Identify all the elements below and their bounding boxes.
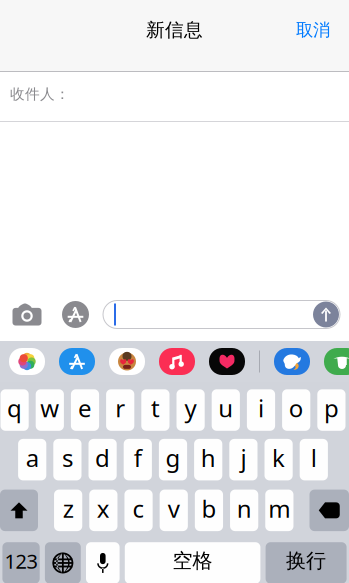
staticText: j <box>240 442 246 474</box>
staticText: x <box>97 492 110 524</box>
button[interactable]: 空格 <box>125 542 260 583</box>
button[interactable]: w <box>36 389 64 431</box>
button[interactable]: 换行 <box>266 542 347 583</box>
button[interactable]: o <box>282 389 310 431</box>
button[interactable]: v <box>160 490 188 531</box>
button[interactable]: Photos <box>9 348 45 375</box>
staticText: 新信息 <box>146 18 203 41</box>
button[interactable]: c <box>124 490 153 531</box>
staticText: p <box>324 392 339 424</box>
staticText: c <box>133 492 145 524</box>
button[interactable]: j <box>229 439 257 480</box>
button[interactable]: Dictate <box>86 542 120 583</box>
staticText: r <box>115 392 125 424</box>
button[interactable]: x <box>89 490 117 531</box>
staticText: z <box>63 492 74 524</box>
button[interactable]: b <box>195 490 223 531</box>
staticText: 123 <box>5 548 38 574</box>
staticText: w <box>40 392 59 424</box>
button[interactable]: m <box>265 490 293 531</box>
staticText: v <box>168 492 180 524</box>
button[interactable]: k <box>264 439 293 480</box>
button[interactable]: Music <box>159 348 195 375</box>
staticText: h <box>201 442 216 474</box>
button[interactable]: f <box>124 439 152 480</box>
staticText: l <box>311 442 317 474</box>
button[interactable]: p <box>317 389 345 431</box>
button[interactable]: App Store <box>61 300 89 328</box>
button[interactable]: e <box>71 389 99 431</box>
button[interactable]: r <box>106 389 134 431</box>
button[interactable]: n <box>230 490 258 531</box>
button[interactable]: Camera <box>12 300 41 328</box>
button[interactable]: 123 <box>2 542 40 583</box>
staticText: n <box>237 492 252 524</box>
button[interactable]: l <box>300 439 328 480</box>
button[interactable]: y <box>176 389 205 431</box>
button[interactable]: a <box>18 439 46 480</box>
button[interactable]: z <box>54 490 82 531</box>
staticText: g <box>165 442 180 474</box>
button[interactable]: s <box>53 439 81 480</box>
staticText: 收件人： <box>10 85 70 103</box>
staticText: f <box>134 442 142 474</box>
button[interactable]: Switch keyboard <box>45 542 81 583</box>
button[interactable]: t <box>141 389 169 431</box>
staticText: 换行 <box>286 549 326 573</box>
button[interactable]: i <box>247 389 275 431</box>
button[interactable]: g <box>159 439 187 480</box>
staticText: t <box>151 392 160 424</box>
staticText: k <box>272 442 285 474</box>
button[interactable]: Digital Touch <box>209 348 245 375</box>
staticText: u <box>218 392 233 424</box>
button[interactable]: Dolphin app <box>274 348 310 375</box>
staticText: 空格 <box>173 549 213 573</box>
button[interactable]: 取消 <box>282 9 349 51</box>
button[interactable]: u <box>212 389 240 431</box>
button[interactable]: h <box>194 439 222 480</box>
button[interactable]: Shift <box>0 490 38 531</box>
staticText: b <box>201 492 216 524</box>
button[interactable]: Delete <box>309 490 349 531</box>
staticText: s <box>62 442 73 474</box>
button[interactable]: Memoji <box>109 348 145 375</box>
staticText: e <box>78 392 92 424</box>
staticText: 取消 <box>296 19 330 41</box>
staticText: y <box>185 392 197 424</box>
button[interactable]: d <box>88 439 117 480</box>
button[interactable]: Green app <box>324 348 349 375</box>
staticText: o <box>289 392 304 424</box>
staticText: a <box>26 442 39 474</box>
staticText: i <box>258 392 264 424</box>
staticText: d <box>95 442 110 474</box>
staticText: m <box>268 492 290 524</box>
staticText: q <box>7 392 22 424</box>
button[interactable]: App Store <box>59 348 95 375</box>
button[interactable]: q <box>0 389 29 431</box>
